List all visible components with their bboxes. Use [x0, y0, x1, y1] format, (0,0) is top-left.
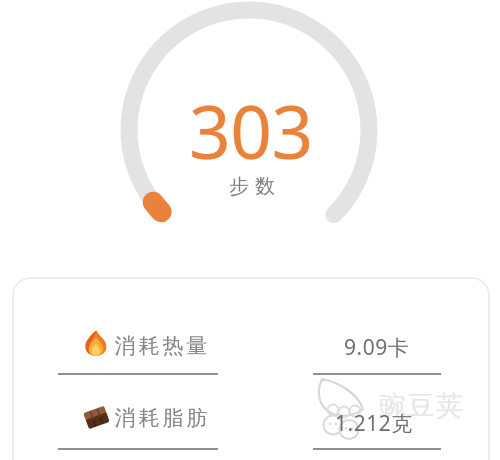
staticText: 1.212克 — [335, 409, 413, 435]
staticText: 豌豆荚 — [379, 389, 465, 423]
button[interactable]: 消耗热量 — [113, 333, 225, 359]
staticText: 消耗热量 — [113, 333, 209, 359]
button[interactable] — [12, 277, 490, 460]
staticText: 303 — [189, 81, 313, 180]
staticText: 步数 — [226, 174, 278, 199]
button[interactable]: 消耗脂肪 — [113, 405, 225, 431]
staticText: 消耗脂肪 — [113, 405, 209, 431]
staticText: 9.09卡 — [344, 333, 410, 359]
